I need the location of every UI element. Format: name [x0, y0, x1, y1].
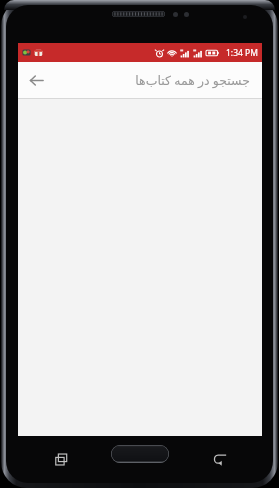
button[interactable]: Home — [111, 445, 169, 463]
button[interactable]: Recent apps — [50, 448, 72, 470]
button[interactable]: Back — [18, 62, 54, 98]
staticText: 1:34 PM — [226, 47, 258, 59]
staticText: جستجو در همه کتاب‌ها — [135, 72, 250, 89]
button[interactable]: Back — [209, 448, 231, 470]
